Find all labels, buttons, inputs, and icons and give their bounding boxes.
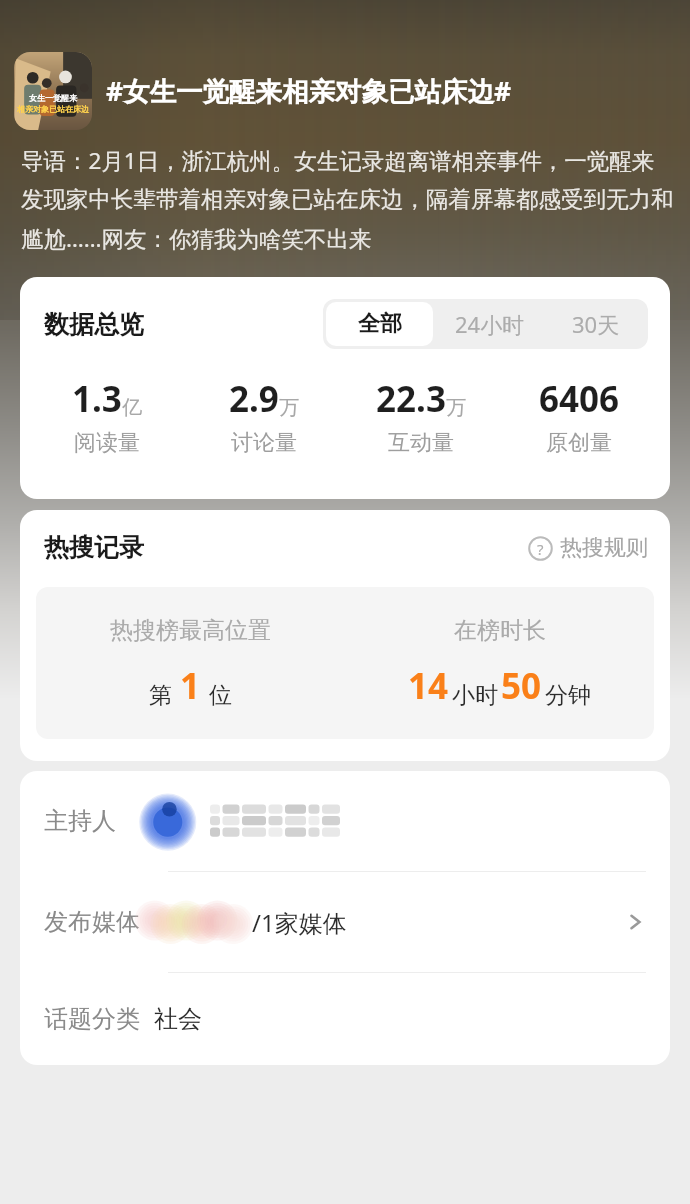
staticText: 全部 [358,310,402,338]
button[interactable]: 女生一觉醒来 [14,52,676,130]
staticText: 第 [149,681,172,710]
staticText: 话题分类 [44,1004,140,1034]
button[interactable]: 24小时 [436,299,544,349]
staticText: 女生一觉醒来 [29,93,77,103]
staticText: 相亲对象已站在床边 [17,104,89,114]
staticText: 发布媒体 [44,907,140,937]
staticText: 主持人 [44,806,116,836]
staticText: 热搜规则 [560,534,648,562]
staticText: /1家媒体 [252,906,347,939]
staticText: 14 [408,662,449,710]
button[interactable]: 发布媒体 [20,872,670,972]
staticText: 在榜时长 [454,616,546,645]
staticText: 社会 [154,1004,202,1034]
button[interactable]: 全部 [326,302,433,346]
staticText: 热搜记录 [44,532,144,563]
staticText: #女生一觉醒来相亲对象已站床边# [106,73,512,109]
staticText: 1.3 [72,375,122,423]
staticText: 阅读量 [74,429,140,457]
button[interactable]: 话题分类 [20,973,670,1065]
staticText: 亿 [122,395,142,420]
staticText: 小时 [452,681,498,710]
staticText: 数据总览 [44,309,144,340]
staticText: 50 [501,662,542,710]
button[interactable]: 热搜规则 [528,534,648,562]
staticText: 热搜榜最高位置 [110,616,271,645]
staticText: 1 [180,662,201,710]
staticText: 6406 [539,375,620,423]
staticText: 22.3 [376,375,446,423]
button[interactable]: 主持人 [20,771,670,871]
staticText: 分钟 [545,681,591,710]
staticText: 位 [209,681,232,710]
staticText: ? [537,539,544,559]
staticText: 导语：2月1日，浙江杭州。女生记录超离谱相亲事件，一觉醒来发现家中长辈带着相亲对… [21,145,676,254]
other: 热搜规则 [528,536,553,561]
staticText: 原创量 [546,429,612,457]
staticText: 互动量 [388,429,454,457]
staticText: 30天 [572,309,620,339]
staticText: 万 [446,395,466,420]
button[interactable]: 30天 [544,299,648,349]
staticText: 讨论量 [231,429,297,457]
other: 查看发布媒体 [624,911,646,933]
staticText: 2.9 [229,375,279,423]
staticText: 万 [279,395,299,420]
staticText: 24小时 [455,309,525,339]
